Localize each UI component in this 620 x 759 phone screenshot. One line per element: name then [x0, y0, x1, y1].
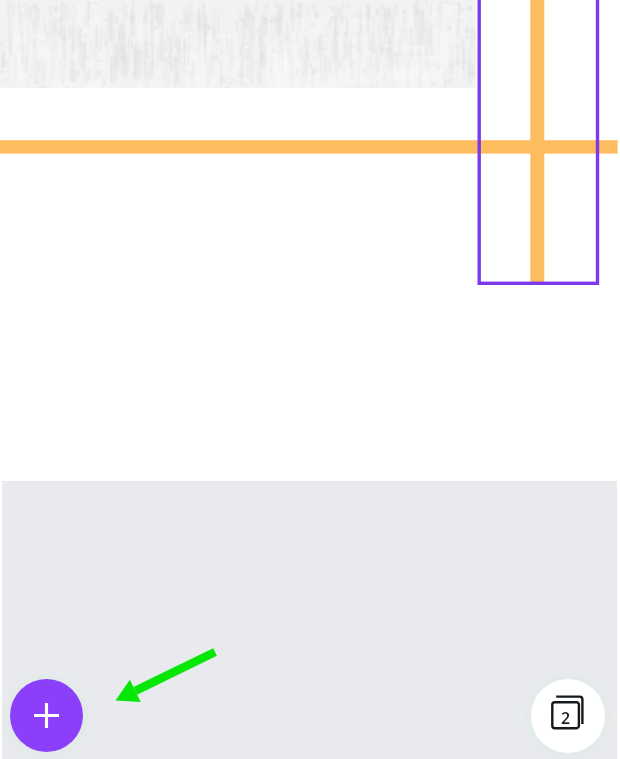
button[interactable]: New tab	[10, 679, 83, 752]
button[interactable]: Switch tabs, 2 open	[531, 679, 605, 753]
staticText: 2	[561, 707, 571, 729]
